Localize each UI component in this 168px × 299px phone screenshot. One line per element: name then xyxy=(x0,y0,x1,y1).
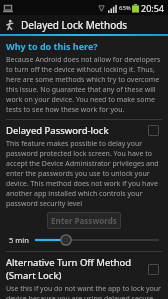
other: Toggle Alternative Turn Off Method (Smar… xyxy=(148,264,159,275)
staticText: Alternative Turn Off Method (Smart Lock) xyxy=(6,256,144,282)
button[interactable]: Alternative Turn Off Method (Smart Lock) xyxy=(6,256,162,282)
other: App icon xyxy=(4,19,16,31)
other: Toggle Delayed Password-lock xyxy=(148,125,159,136)
staticText: 20:54 xyxy=(141,2,165,14)
staticText: Enter Passwords xyxy=(51,215,117,226)
button[interactable]: 5 min xyxy=(6,232,162,248)
staticText: Delayed Lock Methods xyxy=(21,18,128,32)
button[interactable]: Enter Passwords xyxy=(47,212,121,229)
button[interactable]: Delayed Password-lock xyxy=(6,124,162,137)
staticText: Why to do this here? xyxy=(6,40,98,52)
button[interactable]: App icon xyxy=(0,15,168,34)
staticText: 5 min xyxy=(9,235,29,245)
staticText: 65% xyxy=(119,4,131,12)
other: Delay slider xyxy=(35,233,159,247)
staticText: Use this if you do not want the app to l… xyxy=(6,284,162,299)
staticText: Because Android does not allow for devel… xyxy=(6,55,162,115)
staticText: This feature makes possible to delay you… xyxy=(6,139,162,209)
staticText: Delayed Password-lock xyxy=(6,124,109,137)
